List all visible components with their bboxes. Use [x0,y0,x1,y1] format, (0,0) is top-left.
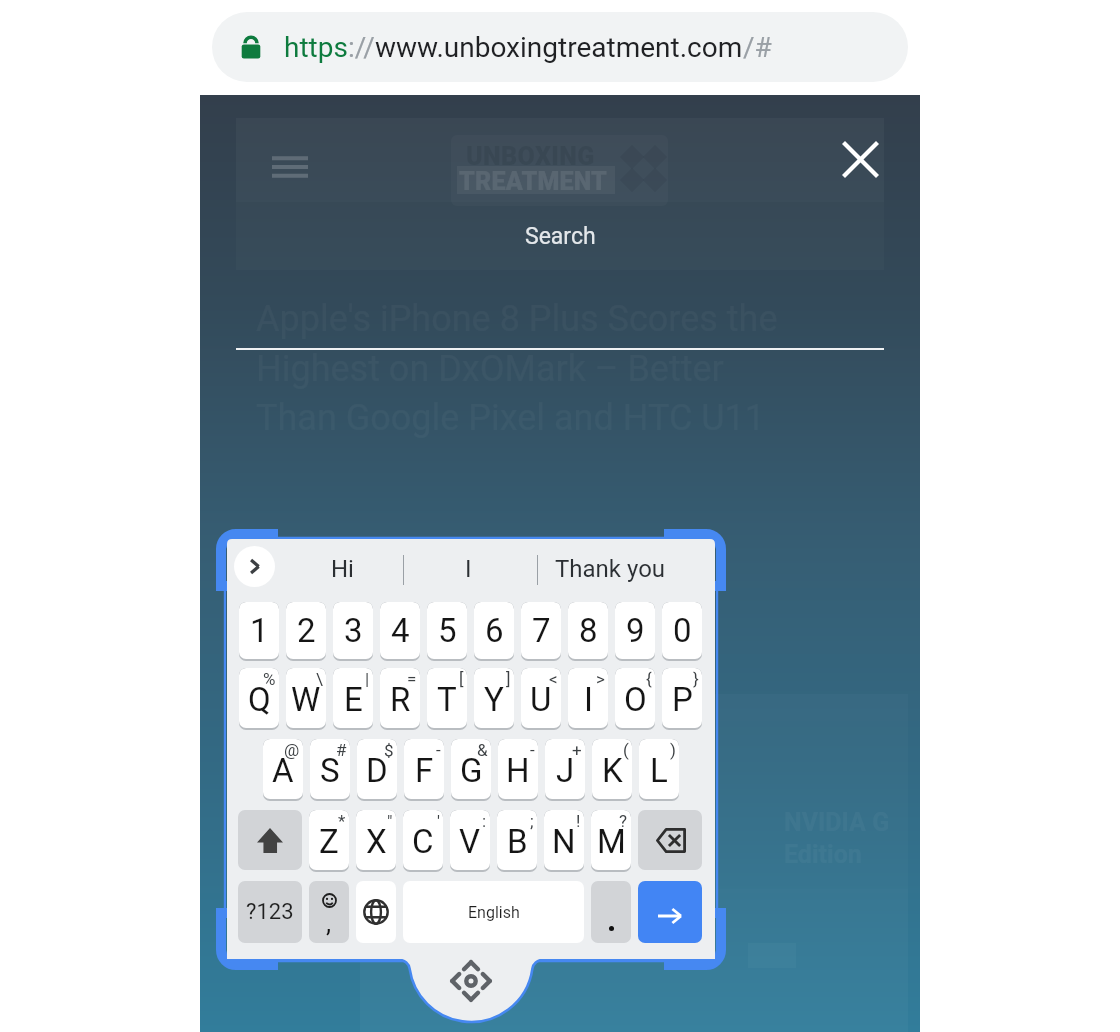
button[interactable]: 2 [286,602,326,659]
staticText: ] [506,669,511,689]
button[interactable]: Enter [638,881,702,943]
button[interactable]: E [333,668,373,728]
staticText: 4 [391,611,410,650]
button[interactable]: J [545,739,585,799]
staticText: + [572,740,582,760]
button[interactable]: B [497,810,537,870]
staticText: Hi [331,555,354,583]
staticText: P [672,680,693,719]
button[interactable]: W [286,668,326,728]
button[interactable]: N [544,810,584,870]
staticText: D [366,751,388,790]
button[interactable]: 8 [568,602,608,659]
button[interactable]: English [403,881,584,943]
button[interactable]: Q [239,668,279,728]
staticText: } [693,669,699,689]
staticText: : [482,811,487,831]
button[interactable]: S [310,739,350,799]
button[interactable]: Comma, emoji [309,881,349,943]
staticText: M [597,822,626,861]
button[interactable]: G [451,739,491,799]
staticText: L [650,751,668,790]
staticText: 8 [579,611,598,650]
button[interactable]: M [591,810,631,870]
staticText: 5 [438,611,457,650]
button[interactable]: 7 [521,602,561,659]
button[interactable]: Unboxing Treatment home [451,135,668,206]
staticText: S [320,751,340,790]
staticText: Q [248,680,271,719]
staticText: > [596,669,605,689]
button[interactable]: Period [591,881,631,943]
button[interactable]: Move keyboard [409,898,533,1022]
staticText: ! [576,811,581,831]
staticText: B [507,822,528,861]
button[interactable]: Backspace [638,810,702,870]
staticText: Y [484,680,504,719]
button[interactable]: O [615,668,655,728]
button[interactable]: C [403,810,443,870]
button[interactable]: Shift [238,810,302,870]
button[interactable]: X [356,810,396,870]
staticText: Thank you [555,555,666,583]
button[interactable]: 0 [662,602,702,659]
staticText: & [477,740,488,760]
staticText: 6 [485,611,504,650]
button[interactable]: K [592,739,632,799]
staticText: /# [743,31,772,64]
button[interactable]: V [450,810,490,870]
staticText: G [460,751,483,790]
button[interactable]: R [380,668,420,728]
staticText: [ [459,669,464,689]
button[interactable]: H [498,739,538,799]
staticText: @ [284,740,300,760]
button[interactable]: Show more options [234,546,275,587]
button[interactable]: Z [309,810,349,870]
staticText: E [344,680,363,719]
button[interactable]: I [413,539,524,599]
staticText: - [530,740,535,760]
button[interactable]: 5 [427,602,467,659]
staticText: W [291,680,321,719]
button[interactable]: U [521,668,561,728]
staticText: https [284,31,348,64]
button[interactable]: ?123 [238,881,302,943]
staticText: { [646,669,652,689]
staticText: J [556,751,575,790]
button[interactable]: Close search [833,132,887,186]
button[interactable]: P [662,668,702,728]
button[interactable]: Menu [266,143,314,191]
staticText: :// [348,31,375,64]
button[interactable]: 9 [615,602,655,659]
staticText: # [336,740,347,760]
staticText: R [390,680,411,719]
button[interactable]: 1 [239,602,279,659]
button[interactable]: 3 [333,602,373,659]
button[interactable]: T [427,668,467,728]
staticText: Z [319,822,339,861]
staticText: 3 [344,611,363,650]
button[interactable]: A [263,739,303,799]
button[interactable]: Y [474,668,514,728]
button[interactable]: 6 [474,602,514,659]
staticText: , [326,908,332,938]
staticText: 2 [297,611,316,650]
staticText: V [459,822,481,861]
staticText: 1 [250,611,269,650]
button[interactable]: F [404,739,444,799]
button[interactable]: Change language [356,881,396,943]
button[interactable]: https [212,12,908,82]
staticText: U [530,680,552,719]
staticText: < [549,669,558,689]
staticText: I [465,555,472,583]
button[interactable]: 4 [380,602,420,659]
button[interactable]: L [639,739,679,799]
button[interactable]: Hi [284,539,401,599]
button[interactable]: D [357,739,397,799]
staticText: X [366,822,387,861]
button[interactable]: I [568,668,608,728]
staticText: O [624,680,647,719]
button[interactable]: Thank you [545,539,675,599]
staticText: UNBOXING [466,142,595,171]
staticText: ?123 [246,899,294,925]
